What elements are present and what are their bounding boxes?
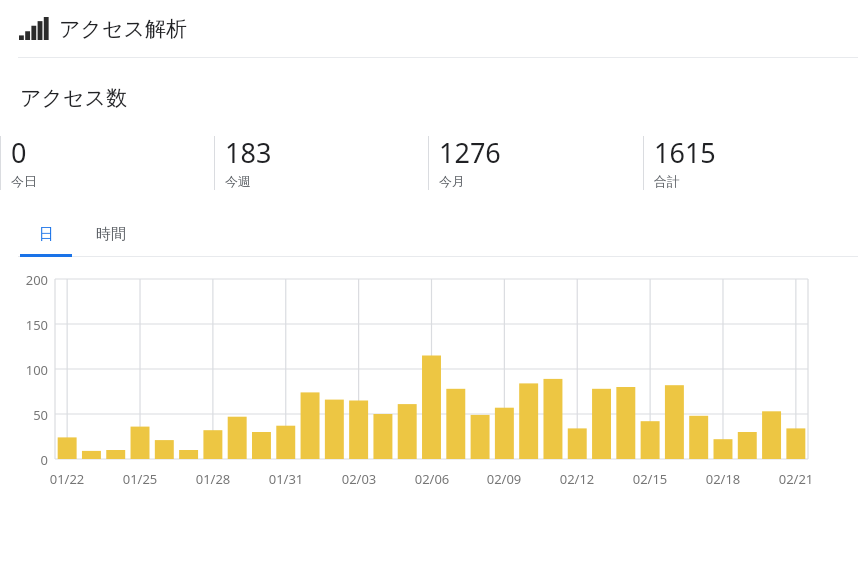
staticText: 200 (0, 271, 48, 289)
staticText: 1615 (654, 134, 716, 171)
staticText: 02/12 (551, 470, 603, 488)
staticText: 日 (39, 225, 54, 244)
staticText: 今週 (225, 173, 251, 189)
staticText: 今日 (11, 173, 37, 189)
staticText: 183 (225, 134, 272, 171)
button[interactable]: Access analytics (0, 0, 858, 57)
staticText: 01/31 (260, 470, 312, 488)
staticText: 時間 (96, 225, 126, 244)
staticText: 1276 (439, 134, 501, 171)
staticText: 合計 (654, 173, 680, 189)
staticText: アクセス数 (20, 85, 127, 111)
staticText: 0 (11, 134, 27, 171)
staticText: 50 (0, 406, 48, 424)
button[interactable]: 1276 (428, 134, 643, 192)
button[interactable]: 1615 (643, 134, 858, 192)
staticText: 02/18 (697, 470, 749, 488)
staticText: 02/21 (770, 470, 822, 488)
staticText: 02/15 (624, 470, 676, 488)
button[interactable]: 0 (0, 134, 214, 192)
staticText: 01/22 (41, 470, 93, 488)
staticText: 01/28 (187, 470, 239, 488)
staticText: 0 (0, 451, 48, 469)
staticText: 100 (0, 361, 48, 379)
other: Access analytics (19, 17, 50, 40)
staticText: 02/09 (478, 470, 530, 488)
staticText: 02/06 (406, 470, 458, 488)
button[interactable]: 時間 (72, 211, 150, 257)
button[interactable]: 183 (214, 134, 428, 192)
staticText: 今月 (439, 173, 465, 189)
staticText: 01/25 (114, 470, 166, 488)
staticText: アクセス解析 (59, 16, 187, 42)
staticText: 150 (0, 316, 48, 334)
staticText: 02/03 (333, 470, 385, 488)
button[interactable]: 日 (20, 211, 72, 257)
